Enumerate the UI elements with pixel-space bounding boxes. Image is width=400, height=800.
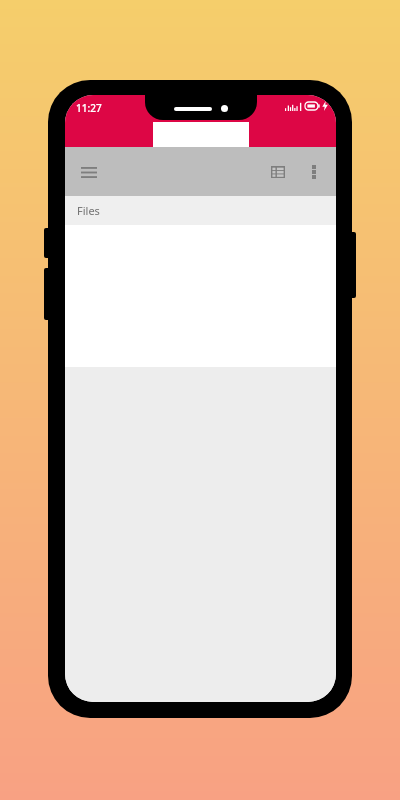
button[interactable]: More options xyxy=(296,154,332,190)
staticText: 11:27 xyxy=(76,101,102,115)
staticText: Files xyxy=(77,203,100,218)
button[interactable]: Open navigation menu xyxy=(71,154,107,190)
button[interactable]: Files xyxy=(65,196,336,225)
button[interactable]: Change view layout xyxy=(260,154,296,190)
